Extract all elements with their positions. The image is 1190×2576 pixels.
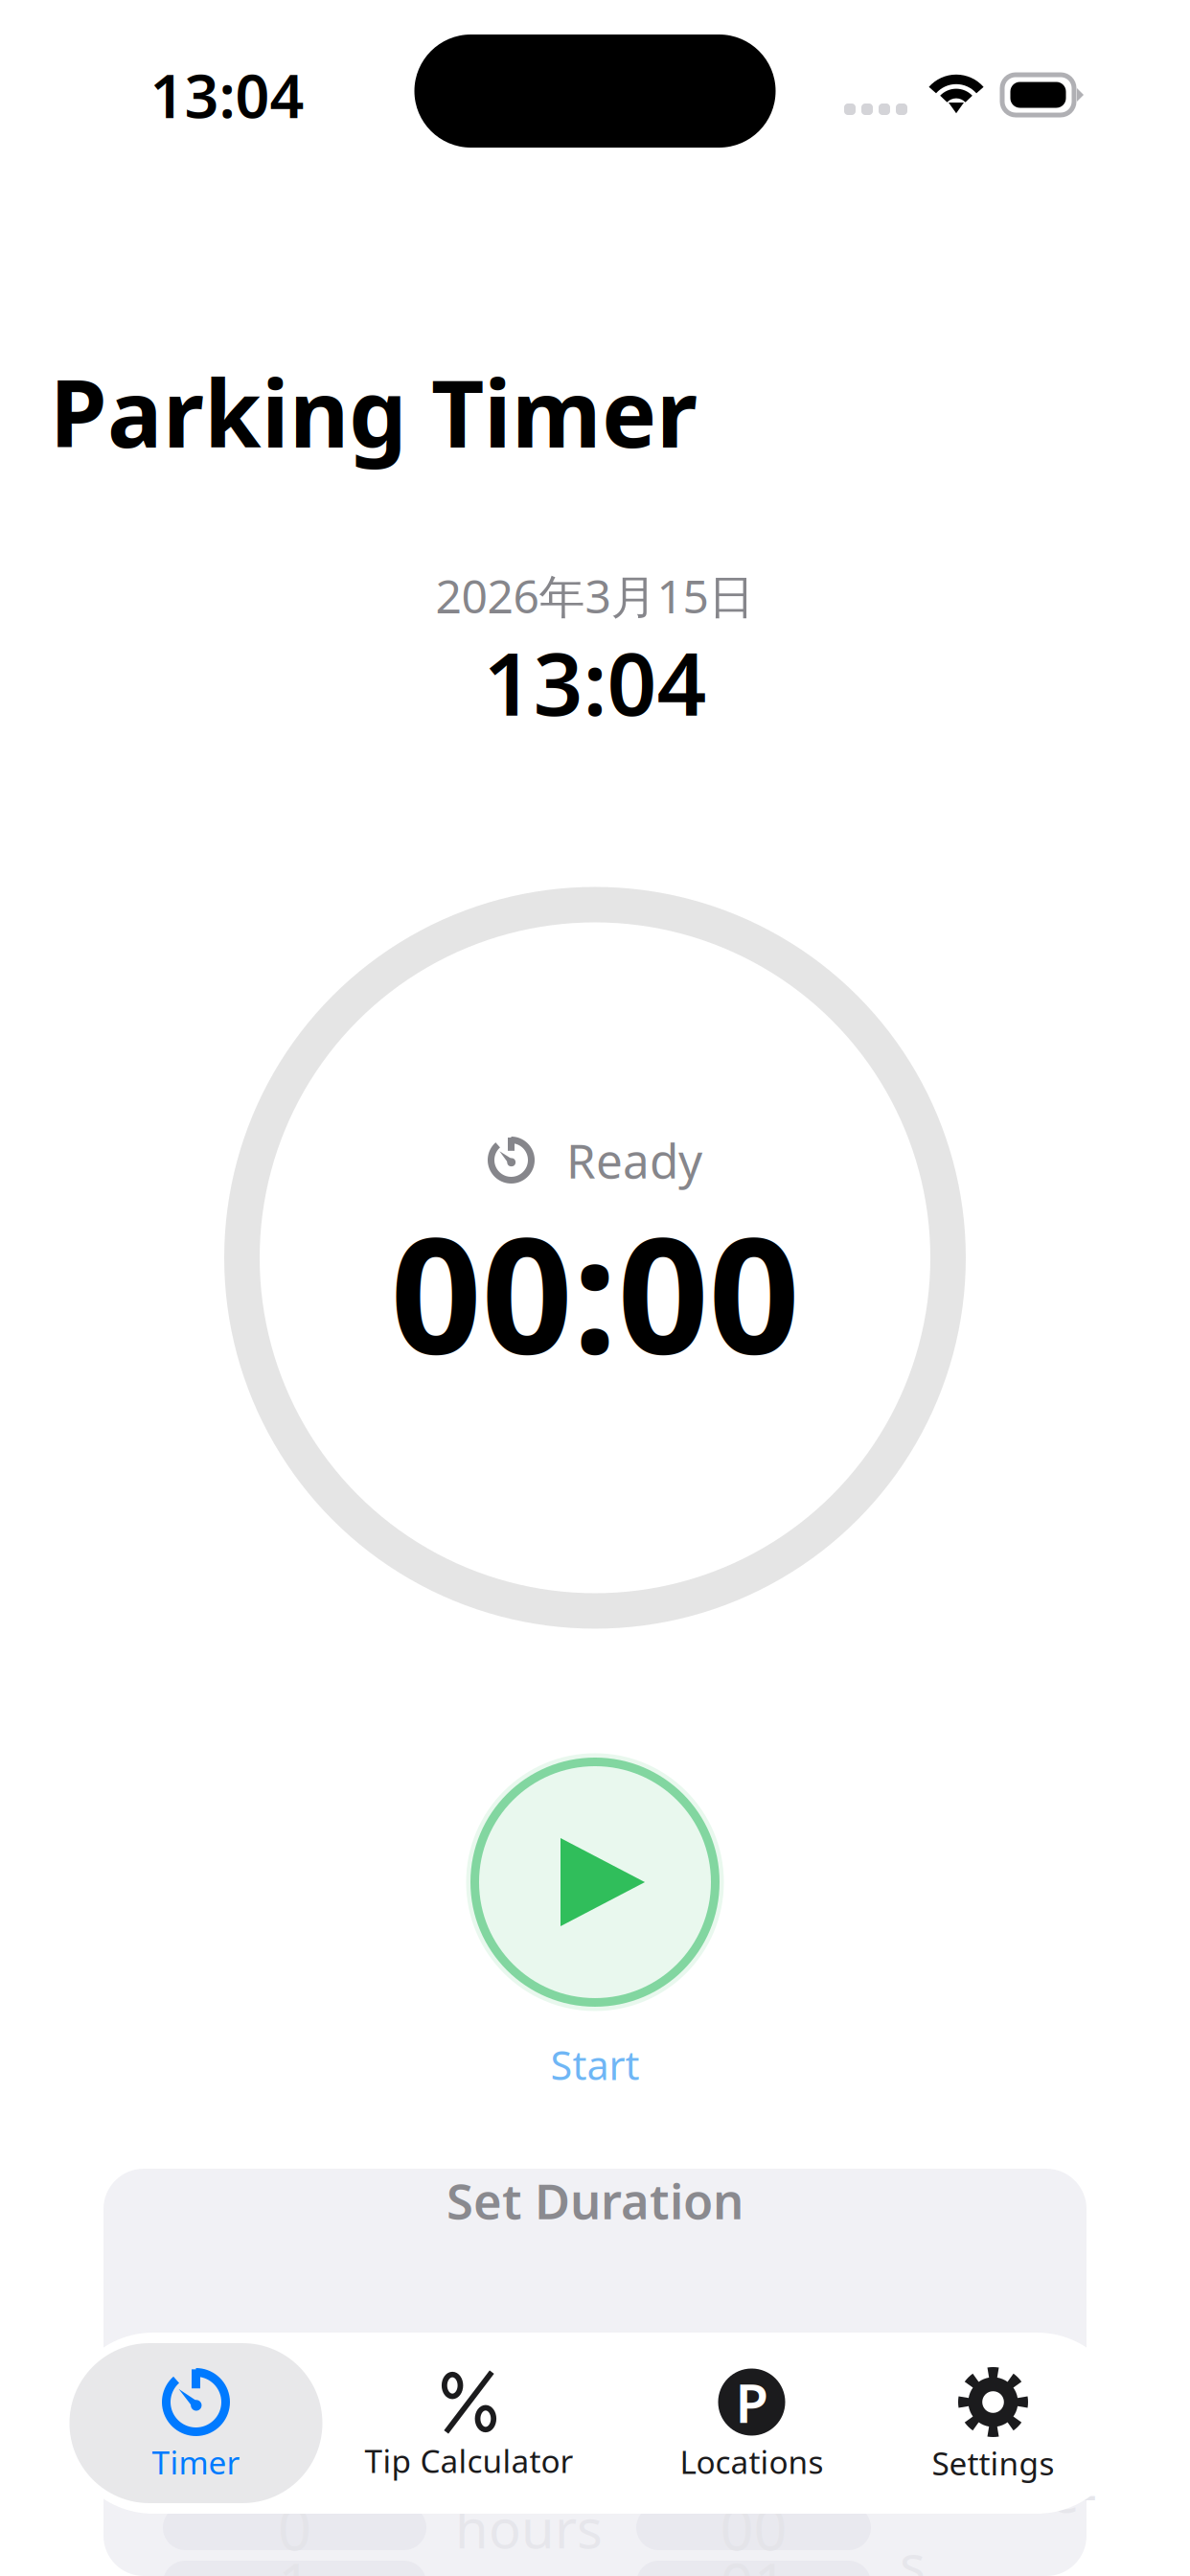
staticText: 13:04 [483,624,707,740]
staticText: Locations [680,2440,824,2483]
staticText: Timer [152,2441,240,2483]
staticText: 2026年3月15日 [435,565,755,626]
staticText: 0 [278,2489,311,2567]
staticText: Parking Timer [50,351,698,473]
button[interactable]: P [609,2343,894,2503]
staticText: minutes [900,2456,1097,2576]
staticText: 1 [278,2544,311,2576]
button[interactable]: Timer [63,2343,329,2503]
button[interactable]: Settings [894,2343,1092,2503]
staticText: Start [550,2038,640,2091]
staticText: 00:00 [390,1185,800,1397]
staticText: P [735,2366,768,2438]
staticText: hours [455,2492,603,2563]
staticText: 13:04 [150,55,304,135]
button[interactable]: Start timer [466,1753,724,2011]
staticText: Ready [566,1129,702,1191]
button[interactable]: Tip Calculator [329,2343,609,2503]
staticText: Tip Calculator [365,2439,573,2482]
staticText: 01 [720,2544,787,2576]
staticText: Settings [932,2442,1054,2484]
staticText: Set Duration [446,2168,744,2233]
staticText: 00 [720,2489,787,2567]
